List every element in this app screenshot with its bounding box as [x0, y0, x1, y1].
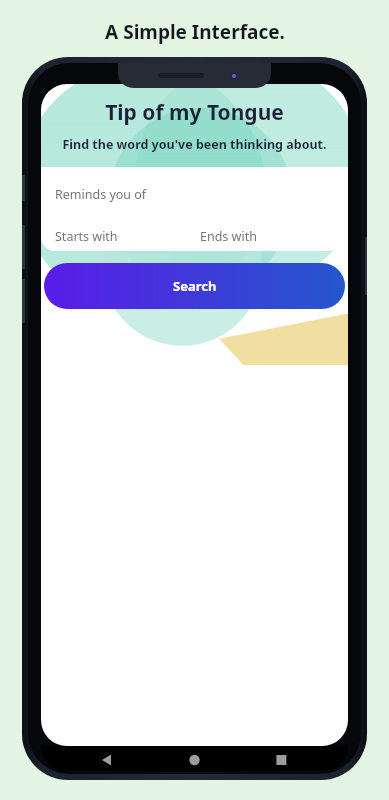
staticText: Find the word you've been thinking about… [62, 136, 327, 153]
button[interactable]: Ends with [200, 223, 334, 249]
button[interactable]: Reminds you of [55, 179, 334, 209]
staticText: A Simple Interface. [105, 19, 285, 45]
staticText: Ends with [200, 228, 257, 245]
staticText: Starts with [55, 228, 118, 245]
button[interactable]: Search [44, 263, 345, 309]
staticText: Reminds you of [55, 186, 147, 203]
staticText: Search [173, 277, 217, 295]
button[interactable]: Starts with [55, 223, 188, 249]
staticText: Tip of my Tongue [105, 98, 284, 127]
